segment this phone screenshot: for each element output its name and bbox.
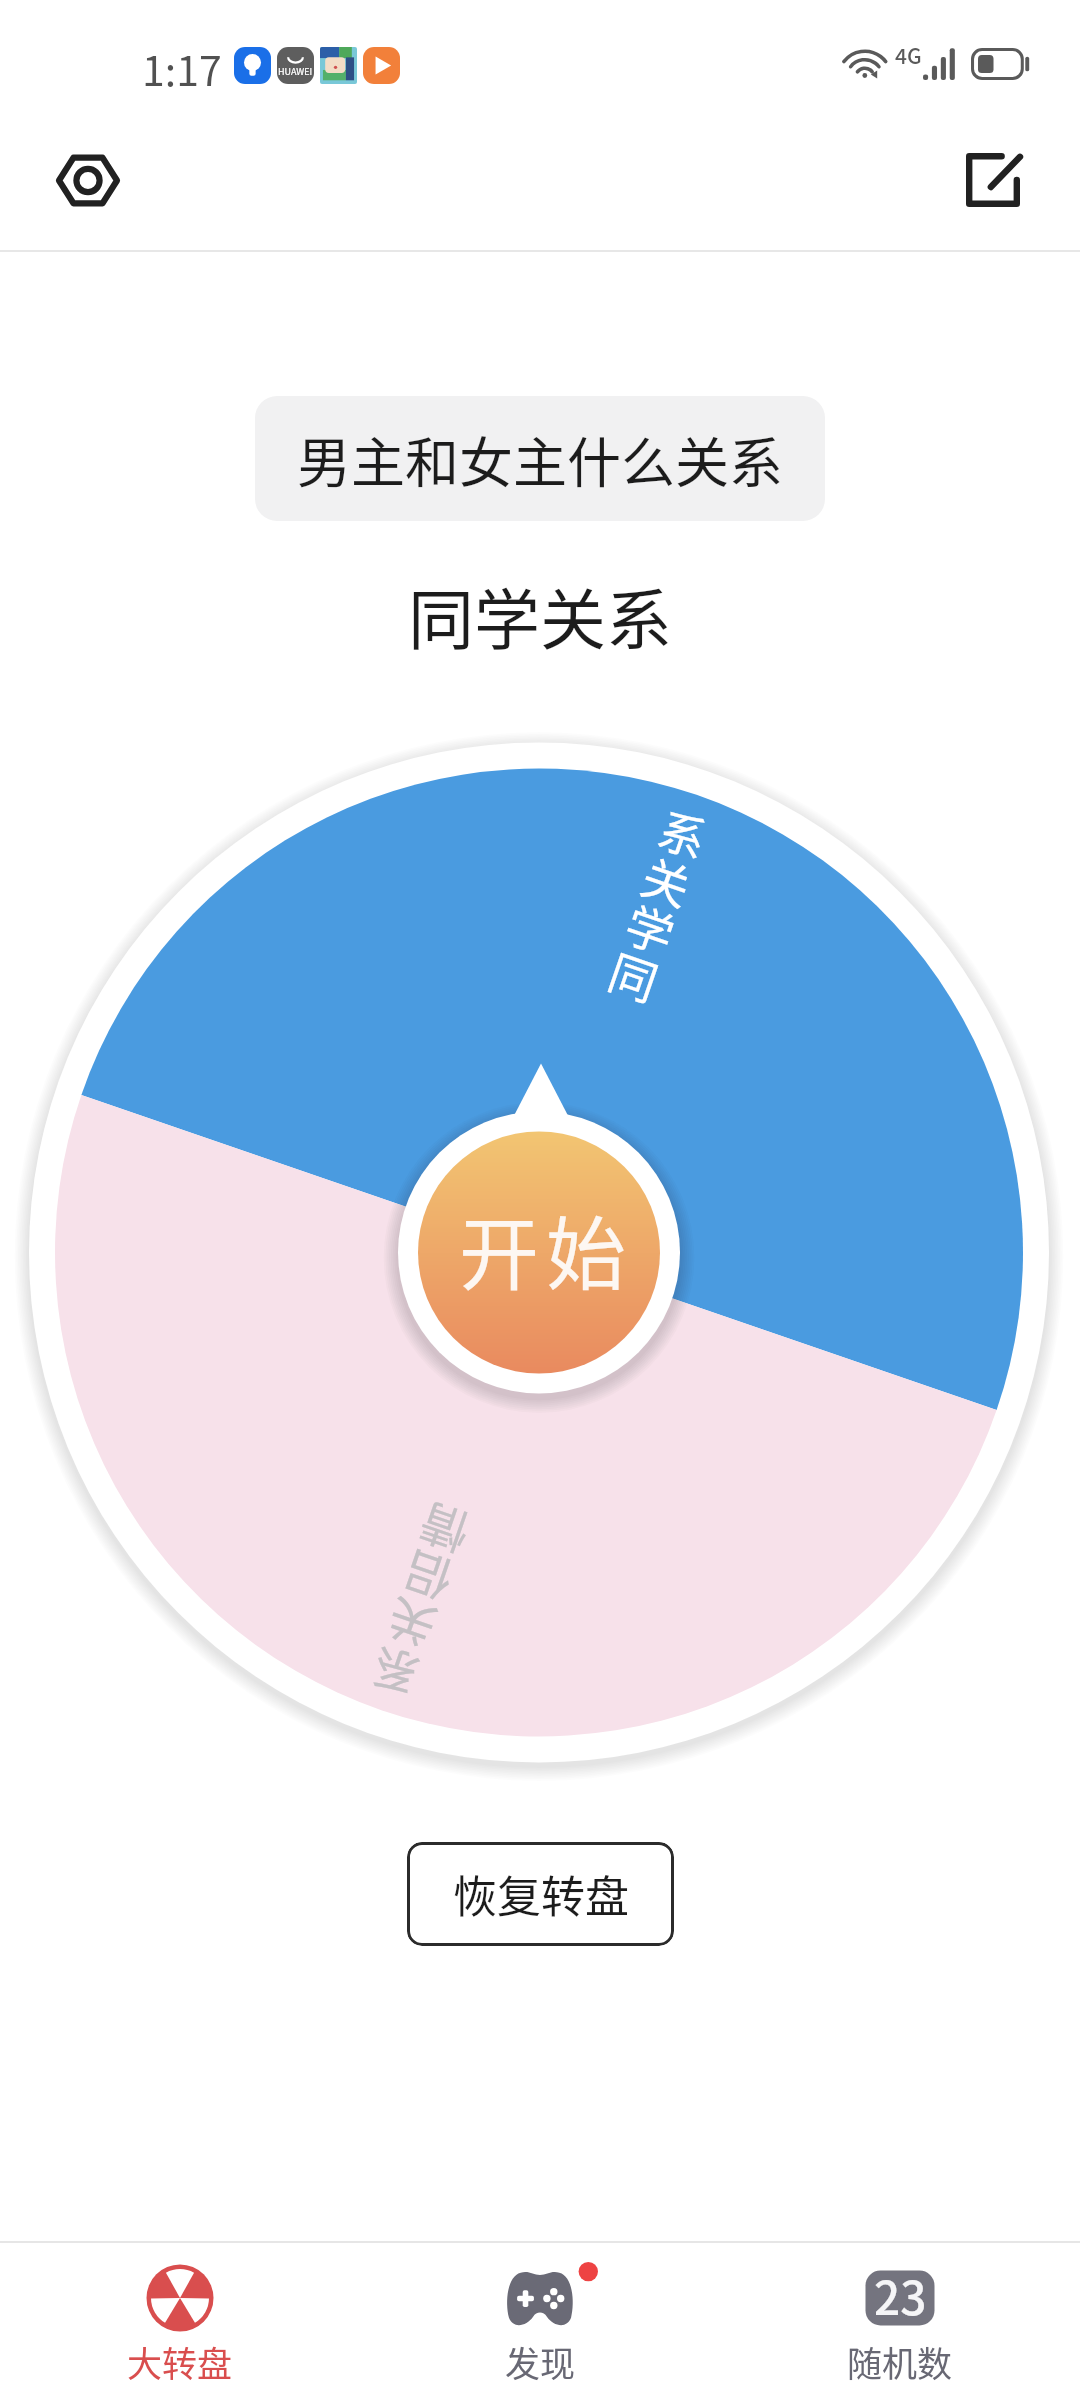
staticText: 23	[874, 2262, 927, 2329]
button[interactable]: Edit	[933, 120, 1053, 240]
button[interactable]: 男主和女主什么关系	[255, 396, 825, 521]
button[interactable]: 发现	[360, 2243, 720, 2400]
staticText: 4G	[895, 40, 922, 70]
button[interactable]: 恢复转盘	[407, 1842, 674, 1946]
staticText: 发现	[505, 2336, 576, 2387]
staticText: 恢复转盘	[453, 1862, 629, 1926]
staticText: 大转盘	[127, 2336, 233, 2387]
staticText: HUAWEI	[278, 65, 313, 78]
button[interactable]: 开始	[425, 1127, 667, 1369]
button[interactable]: 23	[720, 2243, 1080, 2400]
button[interactable]: 大转盘	[0, 2243, 360, 2400]
staticText: 1:17	[142, 38, 222, 92]
staticText: 开始	[459, 1190, 633, 1306]
button[interactable]: Settings	[28, 120, 147, 240]
staticText: 随机数	[847, 2336, 953, 2387]
staticText: 男主和女主什么关系	[297, 420, 783, 498]
staticText: 同学关系	[408, 567, 672, 663]
